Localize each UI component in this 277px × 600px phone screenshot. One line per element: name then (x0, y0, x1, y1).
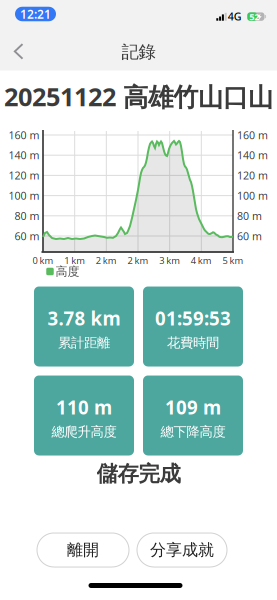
staticText: 12:21 (20, 6, 51, 22)
staticText: 4G (228, 9, 242, 23)
staticText: 140 m (237, 148, 268, 162)
staticText: 160 m (8, 128, 39, 142)
staticText: 儲存完成 (96, 461, 180, 487)
staticText: 120 m (237, 168, 268, 182)
staticText: 離開 (67, 540, 99, 560)
staticText: 01:59:53 (155, 306, 231, 331)
staticText: 高度 (55, 264, 79, 279)
staticText: 總下降高度 (160, 424, 225, 440)
staticText: 分享成就 (150, 540, 214, 560)
button[interactable]: 分享成就 (137, 533, 227, 567)
staticText: 100 m (8, 188, 39, 203)
staticText: 累計距離 (58, 335, 110, 351)
staticText: 記錄 (121, 41, 155, 63)
staticText: 1 km (64, 254, 85, 267)
staticText: 0 km (32, 254, 53, 267)
staticText: 110 m (56, 395, 112, 420)
staticText: 80 m (14, 209, 39, 223)
staticText: 140 m (8, 148, 39, 162)
staticText: 109 m (165, 395, 221, 420)
button[interactable]: 離開 (37, 533, 129, 567)
staticText: 總爬升高度 (51, 424, 116, 440)
staticText: 80 m (237, 209, 262, 223)
button[interactable] (8, 40, 32, 64)
staticText: 20251122 高雄竹山口山 (4, 80, 273, 113)
staticText: 52 (249, 10, 259, 23)
staticText: 100 m (237, 188, 268, 203)
staticText: 2 km (127, 254, 148, 267)
staticText: 60 m (14, 229, 39, 243)
staticText: 160 m (237, 128, 268, 142)
staticText: 2 km (96, 254, 117, 267)
staticText: 120 m (8, 168, 39, 182)
staticText: 4 km (191, 254, 212, 267)
staticText: 60 m (237, 229, 262, 243)
staticText: 3.78 km (47, 306, 120, 331)
staticText: 3 km (159, 254, 180, 267)
staticText: 花費時間 (167, 335, 219, 351)
staticText: 5 km (222, 254, 243, 267)
